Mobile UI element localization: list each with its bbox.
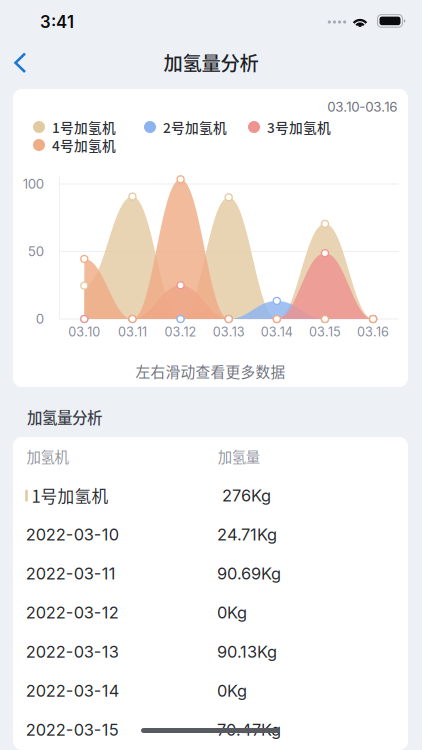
button[interactable]: 2022-03-12 (13, 603, 408, 623)
staticText: 03.16 (357, 324, 389, 340)
button[interactable]: 2022-03-10 (13, 524, 408, 544)
staticText: 03.15 (309, 324, 341, 340)
staticText: 加氢量分析 (163, 48, 258, 76)
staticText: 4号加氢机 (52, 135, 116, 155)
staticText: 3号加氢机 (267, 117, 331, 137)
button[interactable]: Back (0, 40, 44, 84)
staticText: 70.47Kg (217, 720, 281, 740)
button[interactable]: 1号加氢机 (13, 486, 408, 506)
staticText: 0 (36, 311, 44, 327)
staticText: 加氢量分析 (27, 406, 102, 428)
button[interactable]: 2022-03-14 (13, 681, 408, 701)
staticText: 2号加氢机 (163, 117, 227, 137)
staticText: 03.14 (261, 324, 293, 340)
staticText: 2022-03-14 (26, 681, 120, 701)
staticText: 加氢量 (218, 446, 260, 467)
staticText: 3:41 (40, 12, 74, 32)
staticText: 276Kg (222, 486, 271, 505)
staticText: 2022-03-11 (26, 564, 116, 583)
button[interactable]: 2022-03-11 (13, 564, 408, 584)
staticText: 2022-03-13 (26, 642, 119, 662)
staticText: 03.12 (165, 324, 197, 340)
staticText: 03.11 (118, 324, 147, 340)
staticText: 90.13Kg (217, 642, 277, 662)
staticText: 100 (23, 176, 44, 192)
staticText: 24.71Kg (217, 525, 277, 544)
staticText: 加氢机 (26, 446, 68, 467)
staticText: 50 (28, 243, 44, 259)
staticText: 90.69Kg (217, 564, 281, 583)
staticText: 2022-03-10 (26, 525, 119, 544)
staticText: 左右滑动查看更多数据 (135, 360, 285, 382)
staticText: 0Kg (217, 603, 247, 622)
staticText: 1号加氢机 (31, 483, 108, 508)
button[interactable]: 2022-03-13 (13, 642, 408, 662)
staticText: 03.10-03.16 (327, 99, 397, 115)
button[interactable]: 2022-03-15 (13, 720, 408, 740)
staticText: 2022-03-12 (26, 603, 119, 622)
staticText: 2022-03-15 (26, 720, 119, 740)
staticText: 0Kg (217, 681, 247, 701)
staticText: 1号加氢机 (52, 117, 116, 137)
staticText: 03.13 (213, 324, 245, 340)
staticText: 03.10 (68, 324, 100, 340)
